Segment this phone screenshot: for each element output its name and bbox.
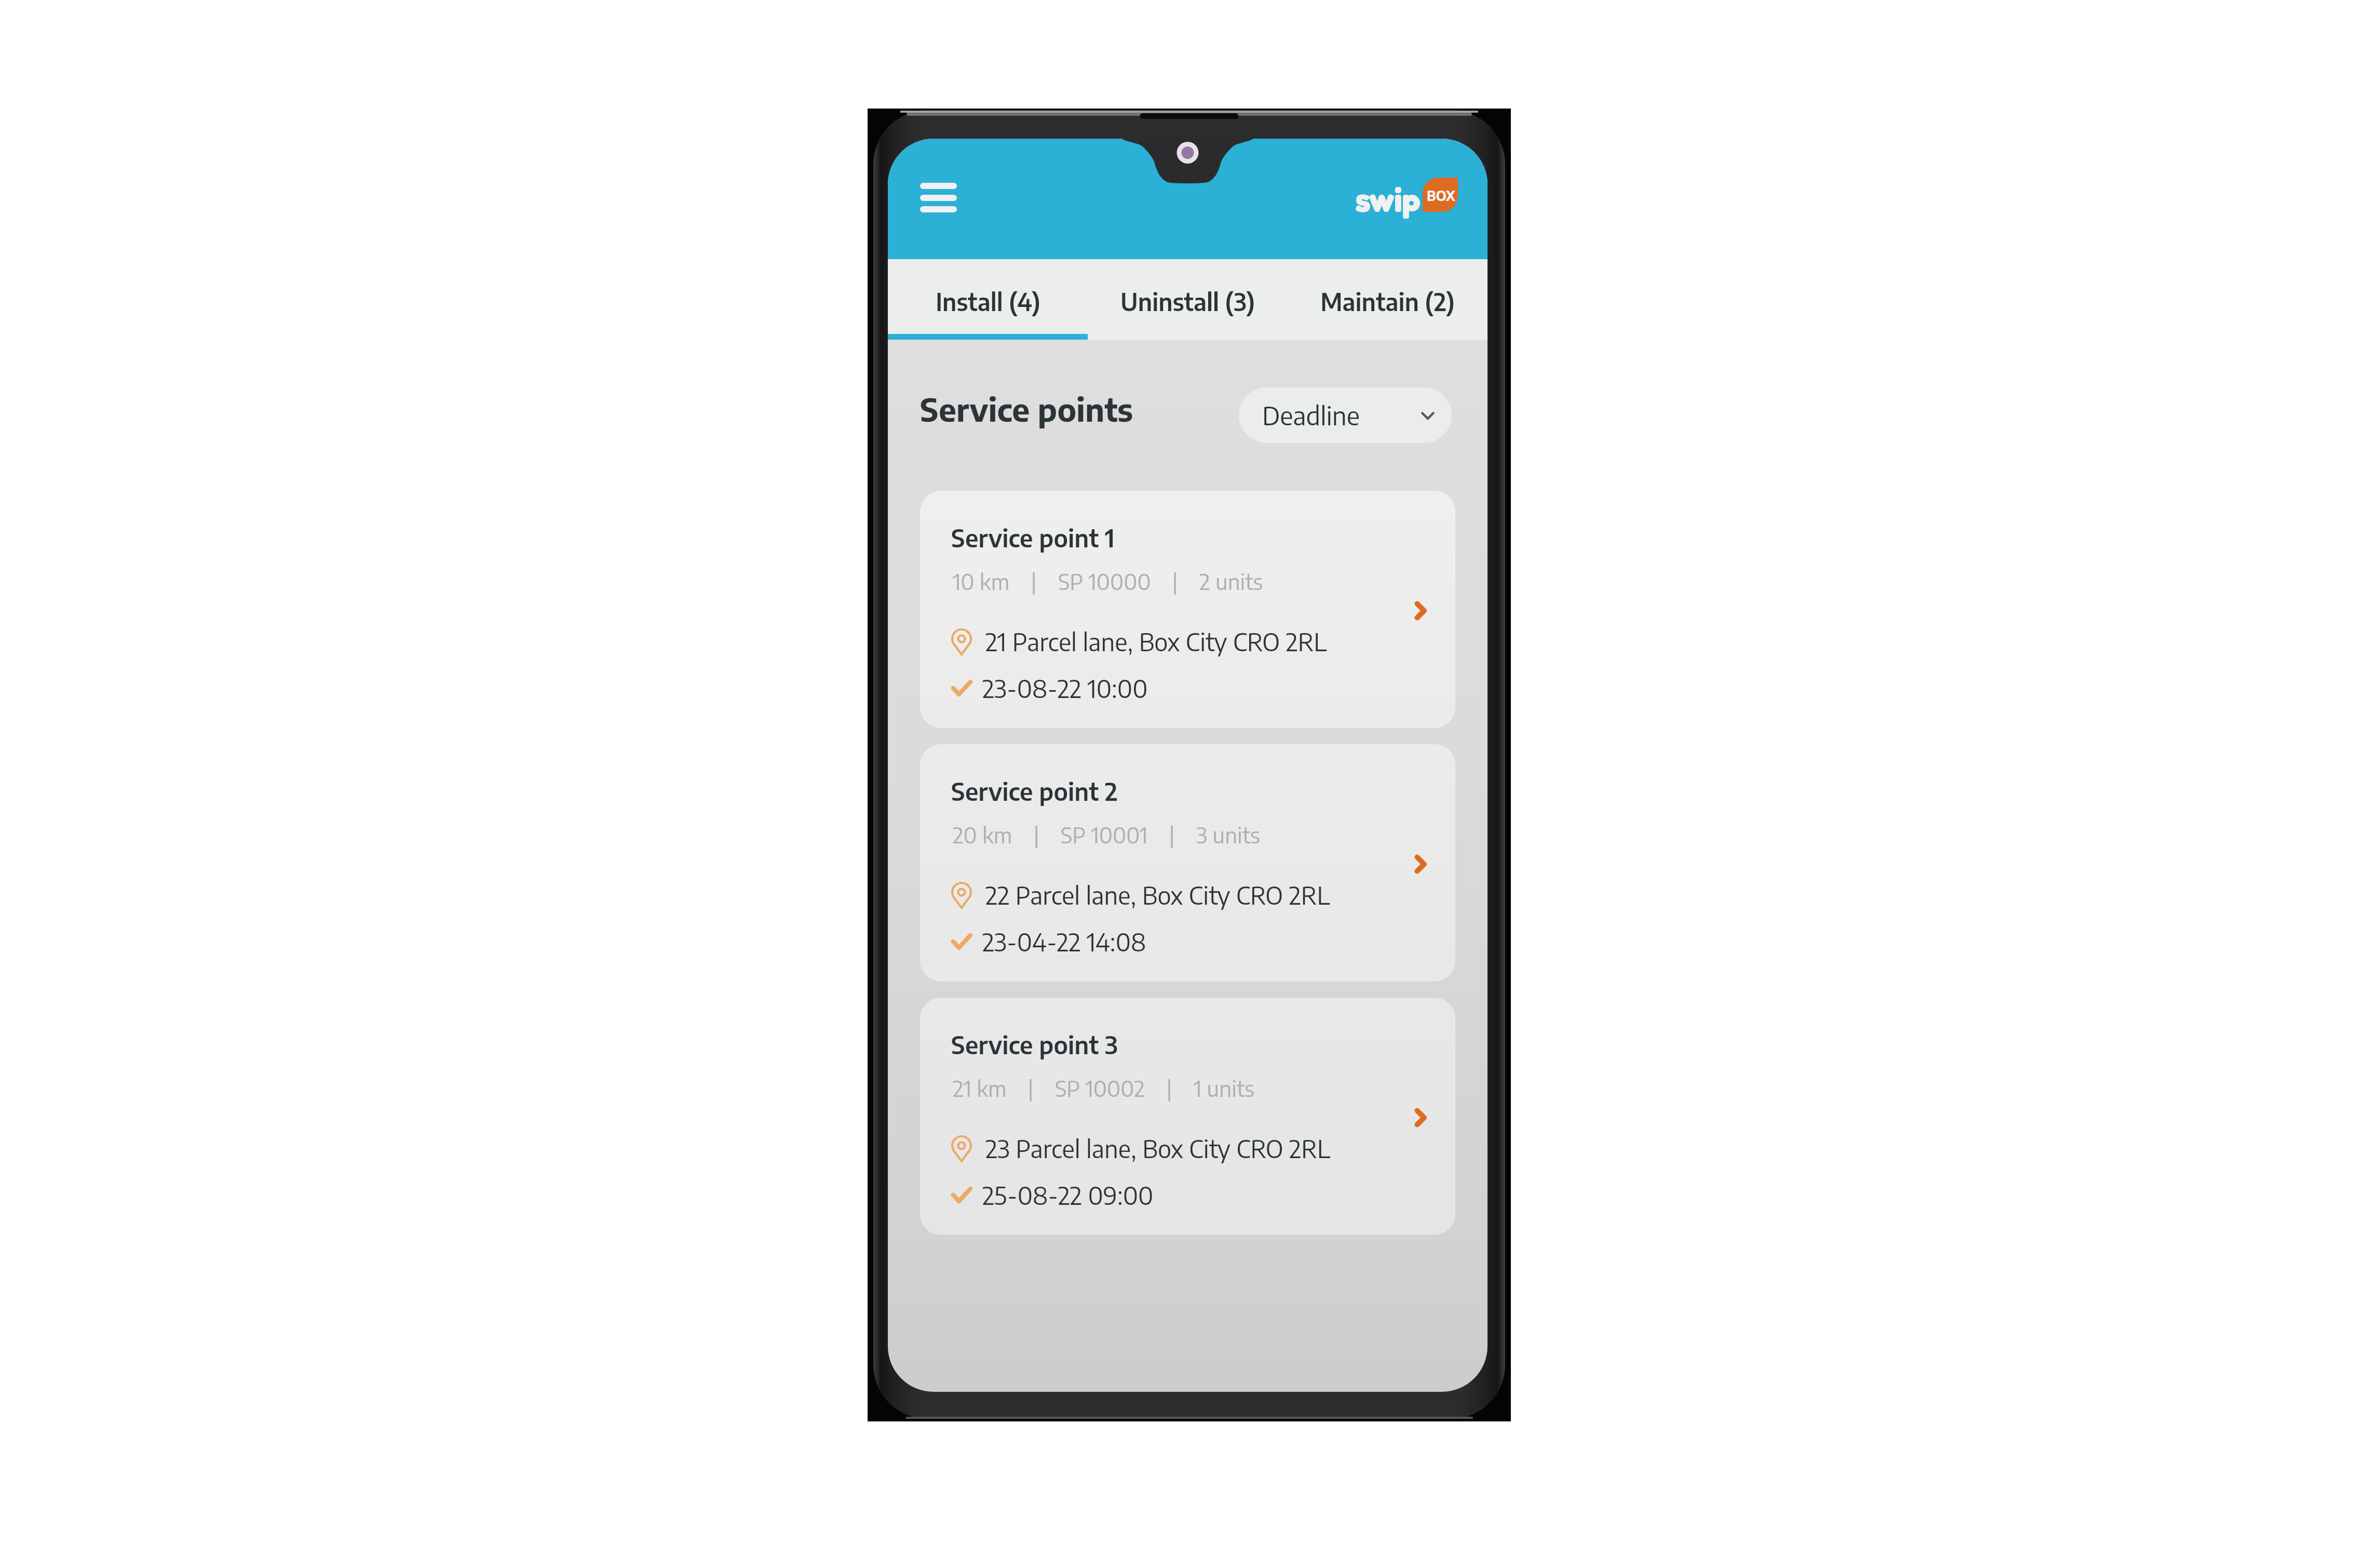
button[interactable]: Install (4): [888, 259, 1088, 340]
staticText: SP 10000: [1058, 568, 1151, 595]
staticText: SP 10002: [1055, 1075, 1145, 1102]
staticText: Maintain (2): [1320, 287, 1455, 316]
staticText: swip: [1355, 179, 1421, 220]
staticText: BOX: [1427, 187, 1455, 204]
button[interactable]: Uninstall (3): [1088, 259, 1288, 340]
staticText: 10 km: [953, 568, 1010, 595]
staticText: |: [1151, 568, 1199, 595]
staticText: 2 units: [1199, 568, 1263, 595]
staticText: |: [1010, 568, 1058, 595]
button[interactable]: Service point 3: [920, 998, 1455, 1235]
staticText: Install (4): [936, 287, 1040, 316]
staticText: 1 units: [1194, 1075, 1255, 1102]
button[interactable]: Menu: [920, 183, 957, 212]
staticText: Service point 1: [951, 522, 1115, 553]
staticText: 20 km: [953, 821, 1012, 848]
staticText: 23-08-22 10:00: [982, 673, 1148, 704]
button[interactable]: SwipBox: [1355, 167, 1462, 214]
staticText: 21 Parcel lane, Box City CRO 2RL: [985, 626, 1327, 657]
staticText: 3 units: [1196, 821, 1260, 848]
staticText: Service point 2: [951, 776, 1118, 807]
button[interactable]: Service point 2: [920, 744, 1455, 982]
staticText: 23-04-22 14:08: [982, 926, 1146, 957]
button[interactable]: Service point 1: [920, 491, 1455, 728]
staticText: |: [1145, 1075, 1194, 1102]
button[interactable]: Deadline: [1239, 387, 1452, 443]
staticText: Uninstall (3): [1120, 287, 1255, 316]
staticText: Deadline: [1262, 399, 1360, 431]
staticText: Service point 3: [951, 1029, 1118, 1060]
staticText: 25-08-22 09:00: [982, 1180, 1154, 1211]
staticText: |: [1148, 821, 1196, 848]
staticText: SP 10001: [1061, 821, 1148, 848]
staticText: 22 Parcel lane, Box City CRO 2RL: [985, 880, 1330, 910]
staticText: |: [1012, 821, 1061, 848]
staticText: |: [1007, 1075, 1055, 1102]
staticText: 21 km: [953, 1075, 1007, 1102]
button[interactable]: Maintain (2): [1288, 259, 1487, 340]
staticText: 23 Parcel lane, Box City CRO 2RL: [985, 1133, 1331, 1164]
staticText: Service points: [920, 389, 1133, 428]
